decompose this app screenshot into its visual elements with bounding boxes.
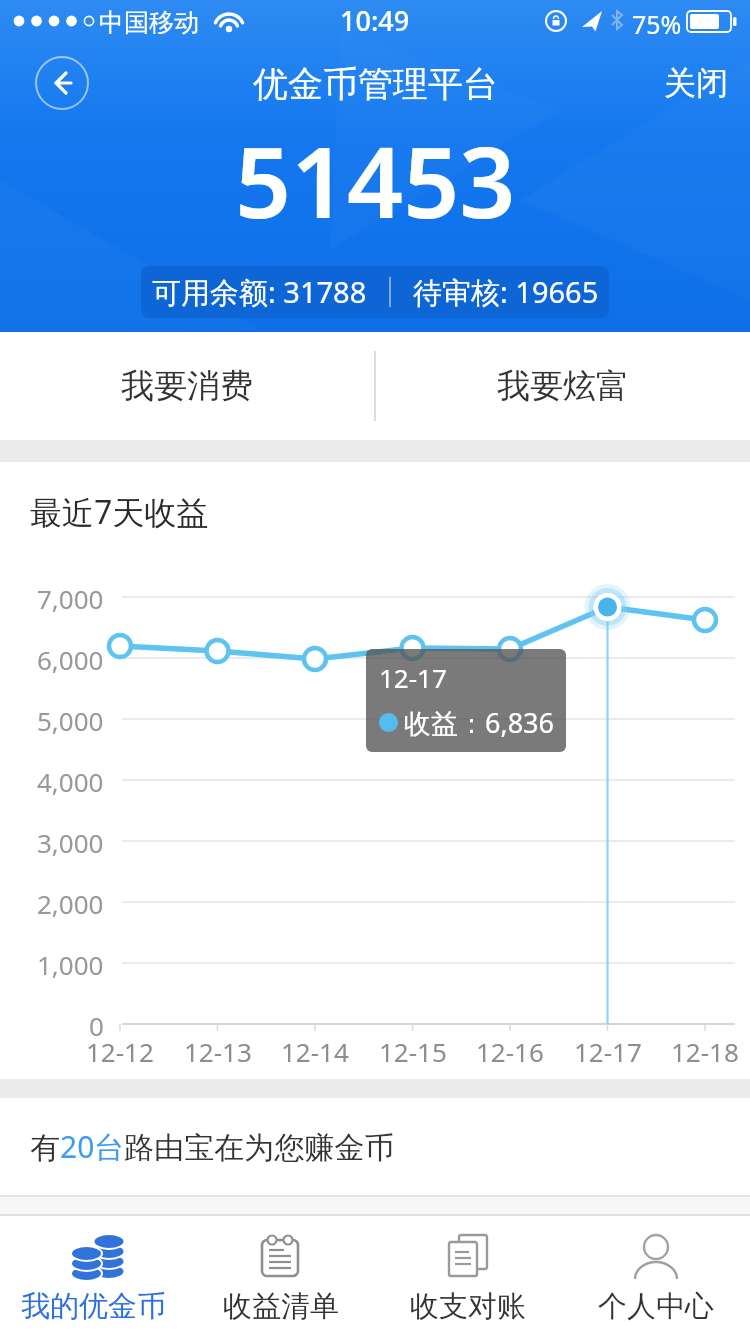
staticText: 12-17 [379, 660, 447, 695]
button[interactable]: 我的优金币 [0, 1216, 187, 1334]
staticText: 收益清单 [223, 1288, 339, 1325]
staticText: 我要炫富 [497, 365, 629, 407]
staticText: 0 [89, 1008, 104, 1040]
staticText: 1,000 [37, 947, 104, 979]
button[interactable]: 收支对账 [374, 1216, 562, 1334]
staticText: 7,000 [37, 581, 104, 613]
staticText: 优金币管理平台 [253, 62, 498, 106]
staticText: 10:49 [340, 2, 410, 39]
staticText: 12-13 [184, 1034, 252, 1066]
button[interactable]: 我要炫富 [376, 332, 750, 440]
staticText: 12-12 [86, 1034, 154, 1066]
staticText: 51453 [235, 113, 516, 227]
staticText: 最近7天收益 [30, 490, 209, 534]
staticText: 12-15 [379, 1034, 447, 1066]
staticText: 5,000 [37, 703, 104, 735]
staticText: 12-16 [476, 1034, 544, 1066]
staticText: 12-14 [281, 1034, 349, 1066]
button[interactable] [35, 56, 89, 110]
button[interactable]: 我要消费 [0, 332, 374, 440]
staticText: 收支对账 [410, 1288, 526, 1325]
staticText: 12-18 [671, 1034, 739, 1066]
staticText: 6,000 [37, 642, 104, 674]
staticText: 关闭 [664, 63, 728, 103]
staticText: 12-17 [574, 1034, 642, 1066]
button[interactable]: 有20台路由宝在为您赚金币 [0, 1098, 750, 1195]
staticText: 收益：6,836 [404, 704, 555, 741]
staticText: 有20台路由宝在为您赚金币 [30, 1126, 395, 1167]
staticText: 3,000 [37, 825, 104, 857]
staticText: 待审核: 19665 [413, 272, 599, 312]
staticText: 我要消费 [121, 365, 253, 407]
staticText: 我的优金币 [21, 1288, 166, 1325]
staticText: 4,000 [37, 764, 104, 796]
staticText: 75% [632, 7, 682, 41]
staticText: 可用余额: 31788 [152, 272, 367, 312]
button[interactable]: 收益清单 [187, 1216, 374, 1334]
button[interactable]: 个人中心 [562, 1216, 750, 1334]
staticText: 个人中心 [598, 1288, 714, 1325]
button[interactable]: 关闭 [664, 56, 748, 110]
staticText: 中国移动 [99, 7, 199, 38]
staticText: 2,000 [37, 886, 104, 918]
